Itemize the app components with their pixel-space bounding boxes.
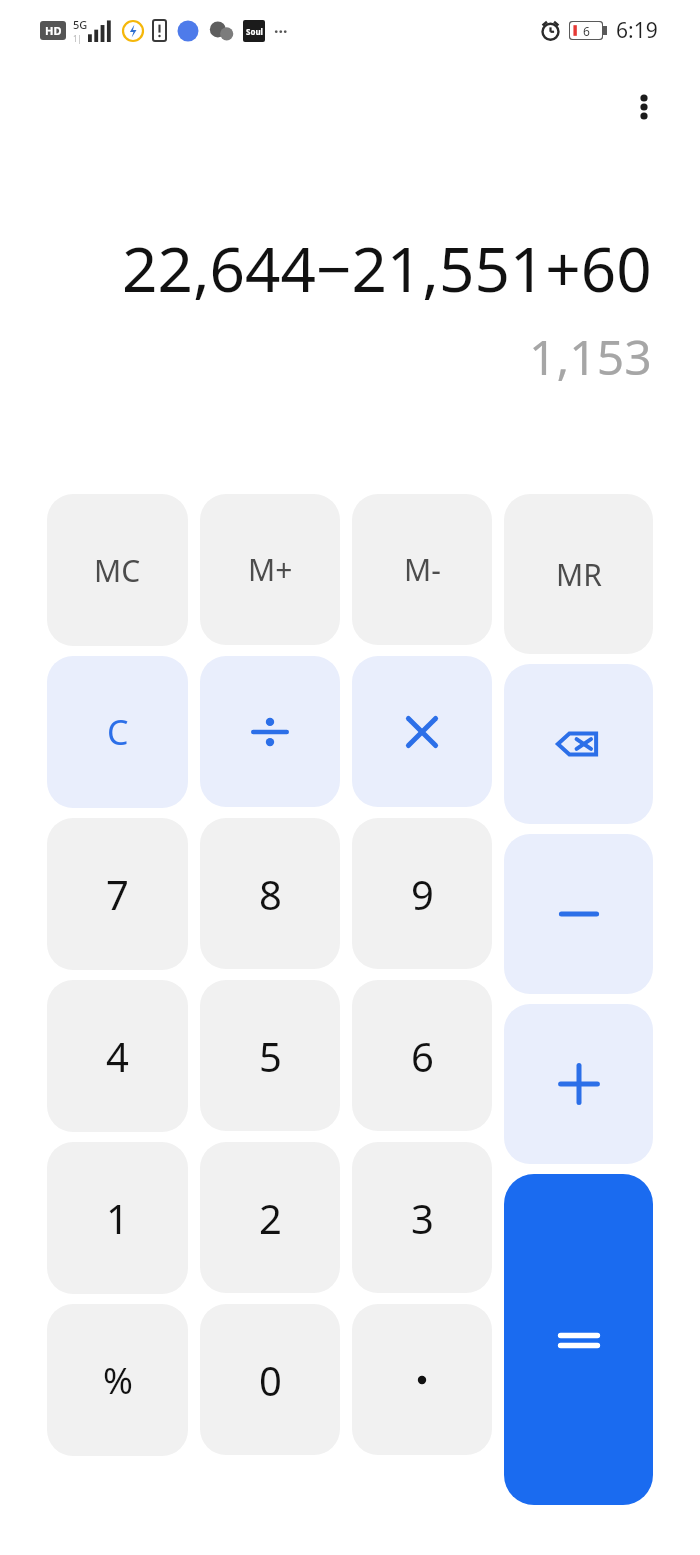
staticText: 6 [583, 23, 590, 39]
button[interactable]: 0 [200, 1304, 340, 1455]
button[interactable]: C [47, 656, 188, 808]
staticText: ··· [274, 20, 288, 42]
button[interactable]: 8 [200, 818, 340, 969]
staticText: 6:19 [616, 16, 658, 45]
button[interactable]: Minus [504, 834, 653, 994]
staticText: MR [556, 554, 602, 595]
button[interactable]: Equals [504, 1174, 653, 1505]
staticText: 7 [106, 867, 129, 921]
staticText: M+ [248, 549, 293, 590]
button[interactable]: 4 [47, 980, 188, 1132]
button[interactable]: M- [352, 494, 492, 645]
button[interactable]: 7 [47, 818, 188, 970]
button[interactable]: Backspace [504, 664, 653, 824]
staticText: 5 [259, 1029, 282, 1083]
button[interactable]: Divide [200, 656, 340, 807]
staticText: M- [404, 549, 441, 590]
button[interactable]: 2 [200, 1142, 340, 1293]
button[interactable]: 9 [352, 818, 492, 969]
staticText: MC [94, 550, 141, 591]
staticText: 6 [411, 1029, 434, 1083]
button[interactable]: MC [47, 494, 188, 646]
button[interactable]: 3 [352, 1142, 492, 1293]
staticText: 9 [411, 867, 434, 921]
staticText: 0 [259, 1353, 282, 1407]
staticText: 4 [106, 1029, 129, 1083]
button[interactable]: More options [616, 79, 672, 135]
staticText: 3 [411, 1191, 434, 1245]
staticText: 22,644−21,551+60 [122, 226, 652, 310]
button[interactable]: Multiply [352, 656, 492, 807]
button[interactable]: % [47, 1304, 188, 1456]
staticText: % [103, 1356, 133, 1405]
staticText: 8 [259, 867, 282, 921]
staticText: Soul [246, 26, 263, 37]
button[interactable]: Decimal point [352, 1304, 492, 1455]
staticText: 1,153 [529, 324, 652, 389]
staticText: 5G [73, 17, 88, 32]
staticText: C [107, 709, 129, 755]
button[interactable]: M+ [200, 494, 340, 645]
staticText: 1| [73, 33, 82, 44]
staticText: 2 [259, 1191, 282, 1245]
button[interactable]: 5 [200, 980, 340, 1131]
button[interactable]: Plus [504, 1004, 653, 1164]
staticText: 1 [106, 1191, 129, 1245]
button[interactable]: 6 [352, 980, 492, 1131]
button[interactable]: 1 [47, 1142, 188, 1294]
button[interactable]: MR [504, 494, 653, 654]
staticText: HD [45, 23, 62, 38]
